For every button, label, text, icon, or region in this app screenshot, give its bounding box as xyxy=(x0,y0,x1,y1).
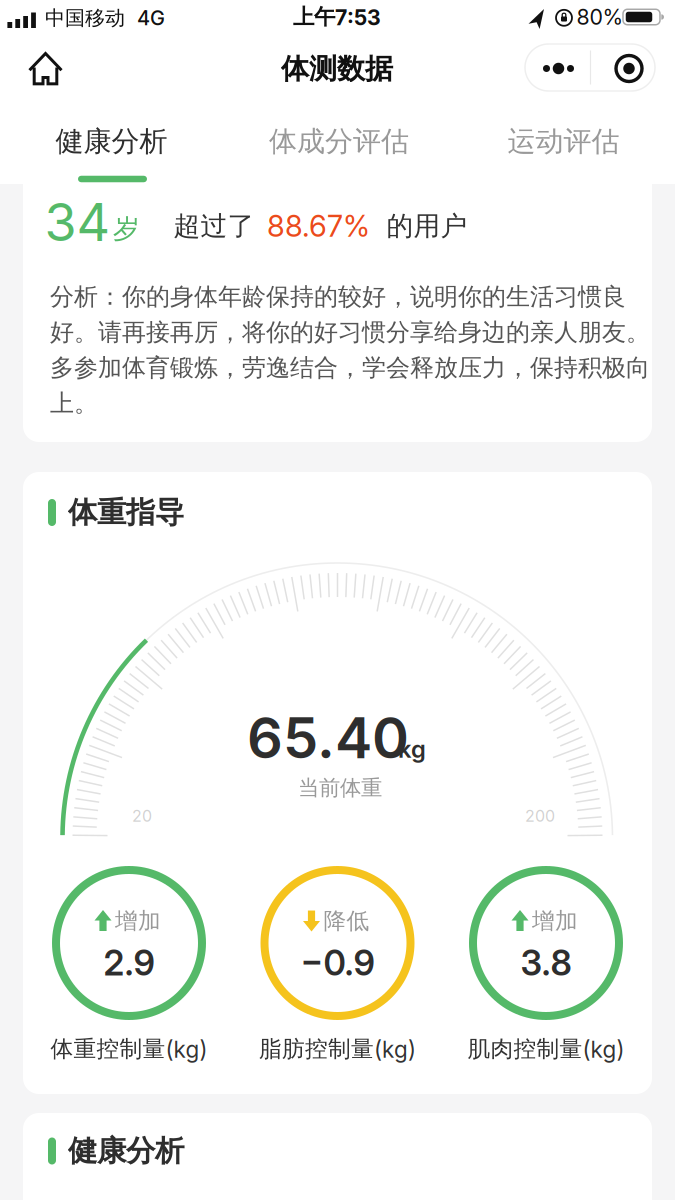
staticText: 上午7:53 xyxy=(293,4,381,30)
staticText: kg xyxy=(398,735,426,763)
staticText: 200 xyxy=(525,807,555,825)
staticText: 当前体重 xyxy=(298,775,382,801)
staticText: 3.8 xyxy=(520,943,571,983)
staticText: 分析：你的身体年龄保持的较好，说明你的生活习惯良 好。请再接再厉，将你的好习惯分… xyxy=(50,282,650,418)
staticText: 增加 xyxy=(532,907,578,935)
staticText: 健康分析 xyxy=(55,124,167,159)
staticText: 88.67% xyxy=(267,209,370,243)
staticText: 4G xyxy=(137,6,165,30)
staticText: 34 xyxy=(44,191,110,253)
staticText: 2.9 xyxy=(103,943,154,983)
staticText: 岁 xyxy=(113,213,140,245)
staticText: 增加 xyxy=(115,907,161,935)
staticText: 中国移动 xyxy=(45,6,125,30)
staticText: 降低 xyxy=(323,907,369,935)
staticText: 体成分评估 xyxy=(269,124,409,159)
staticText: 体重控制量(kg) xyxy=(50,1035,207,1063)
staticText: 体测数据 xyxy=(281,52,393,86)
button[interactable]: 运动评估 xyxy=(0,0,675,1200)
staticText: 80% xyxy=(576,4,623,30)
button[interactable]: Home xyxy=(0,0,675,1200)
staticText: 20 xyxy=(132,807,152,825)
staticText: 体重指导 xyxy=(68,494,184,530)
staticText: 肌肉控制量(kg) xyxy=(467,1035,624,1063)
button[interactable]: More xyxy=(0,0,675,1200)
button[interactable]: 体成分评估 xyxy=(0,0,675,1200)
staticText: −0.9 xyxy=(300,943,374,983)
staticText: 运动评估 xyxy=(507,124,619,159)
staticText: 65.40 xyxy=(247,705,409,771)
button[interactable]: 健康分析 xyxy=(0,0,675,1200)
button[interactable]: Close xyxy=(0,0,675,1200)
staticText: 超过了 xyxy=(173,210,254,242)
staticText: 的用户 xyxy=(386,210,467,242)
staticText: 健康分析 xyxy=(68,1133,184,1169)
staticText: 脂肪控制量(kg) xyxy=(259,1035,416,1063)
